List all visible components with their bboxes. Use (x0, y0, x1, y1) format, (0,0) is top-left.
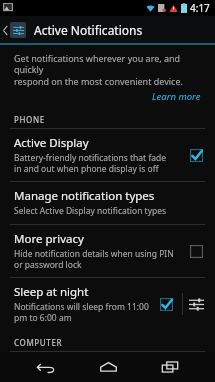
staticText: COMPUTER (14, 337, 63, 348)
staticText: Hide notification details when using PIN… (14, 248, 174, 270)
button[interactable]: Recent apps (153, 352, 187, 382)
staticText: 4:17 (190, 1, 210, 15)
staticText: Get notifications wherever you are, and … (14, 52, 205, 88)
button[interactable]: Navigate up (0, 22, 28, 38)
staticText: PHONE (14, 114, 45, 125)
button[interactable]: Manage notification types (0, 182, 215, 224)
button[interactable]: Disabled (185, 240, 207, 262)
staticText: More privacy (14, 231, 84, 247)
button[interactable]: More privacy (0, 225, 215, 277)
staticText: Manage notification types (14, 188, 155, 204)
button[interactable]: Sleep at night (0, 278, 215, 330)
staticText: Battery-friendly notifications that fade… (14, 152, 167, 174)
staticText: Notifications will sleep from 11:00 pm t… (14, 301, 149, 323)
staticText: Active Notifications (34, 22, 143, 38)
staticText: Learn more (152, 90, 201, 103)
button[interactable]: Enabled (155, 293, 177, 315)
staticText: Sleep at night (14, 284, 89, 300)
button[interactable]: Active Display (0, 129, 215, 181)
button[interactable]: Learn more (152, 90, 201, 103)
staticText: Active Display (14, 135, 89, 151)
button[interactable]: Enabled (185, 144, 207, 166)
staticText: Select Active Display notification types (14, 205, 167, 217)
button[interactable]: Sleep schedule settings (185, 293, 207, 315)
button[interactable]: Home (91, 352, 125, 382)
button[interactable]: Back (28, 352, 62, 382)
